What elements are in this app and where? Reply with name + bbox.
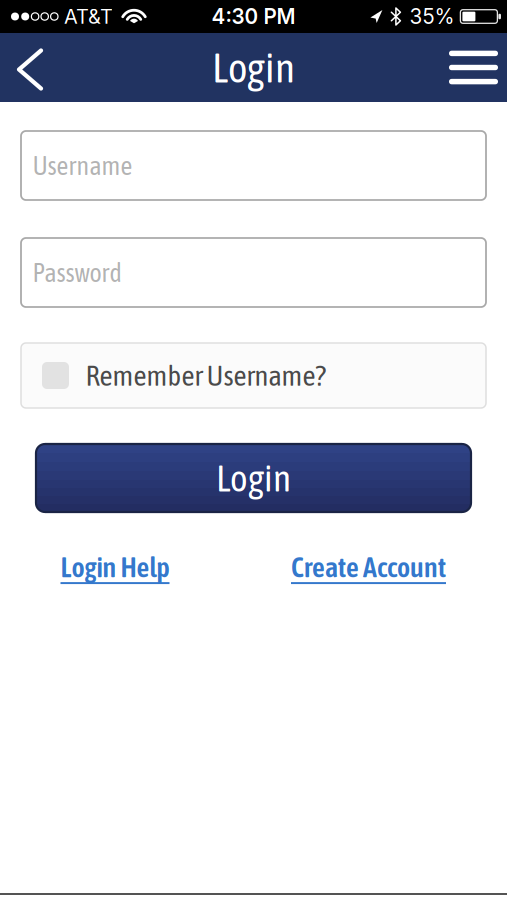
button[interactable]: Password bbox=[0, 238, 507, 307]
staticText: 4:30 PM bbox=[211, 4, 295, 29]
staticText: Create Account bbox=[291, 551, 446, 583]
staticText: Login bbox=[212, 44, 295, 91]
button[interactable]: Remember Username? bbox=[0, 343, 507, 408]
staticText: Remember Username? bbox=[85, 359, 325, 392]
staticText: Login Help bbox=[60, 551, 169, 583]
button[interactable]: Menu bbox=[439, 34, 507, 101]
staticText: 35% bbox=[409, 4, 454, 29]
staticText: Username bbox=[32, 151, 132, 180]
staticText: AT&T bbox=[64, 4, 113, 29]
button[interactable]: Back bbox=[0, 33, 55, 101]
button[interactable]: Login bbox=[0, 444, 507, 512]
staticText: Login bbox=[216, 457, 291, 499]
staticText: Password bbox=[32, 258, 121, 287]
button[interactable]: Login Help bbox=[0, 551, 230, 583]
button[interactable]: Create Account bbox=[230, 551, 507, 583]
button[interactable]: Username bbox=[0, 131, 507, 200]
